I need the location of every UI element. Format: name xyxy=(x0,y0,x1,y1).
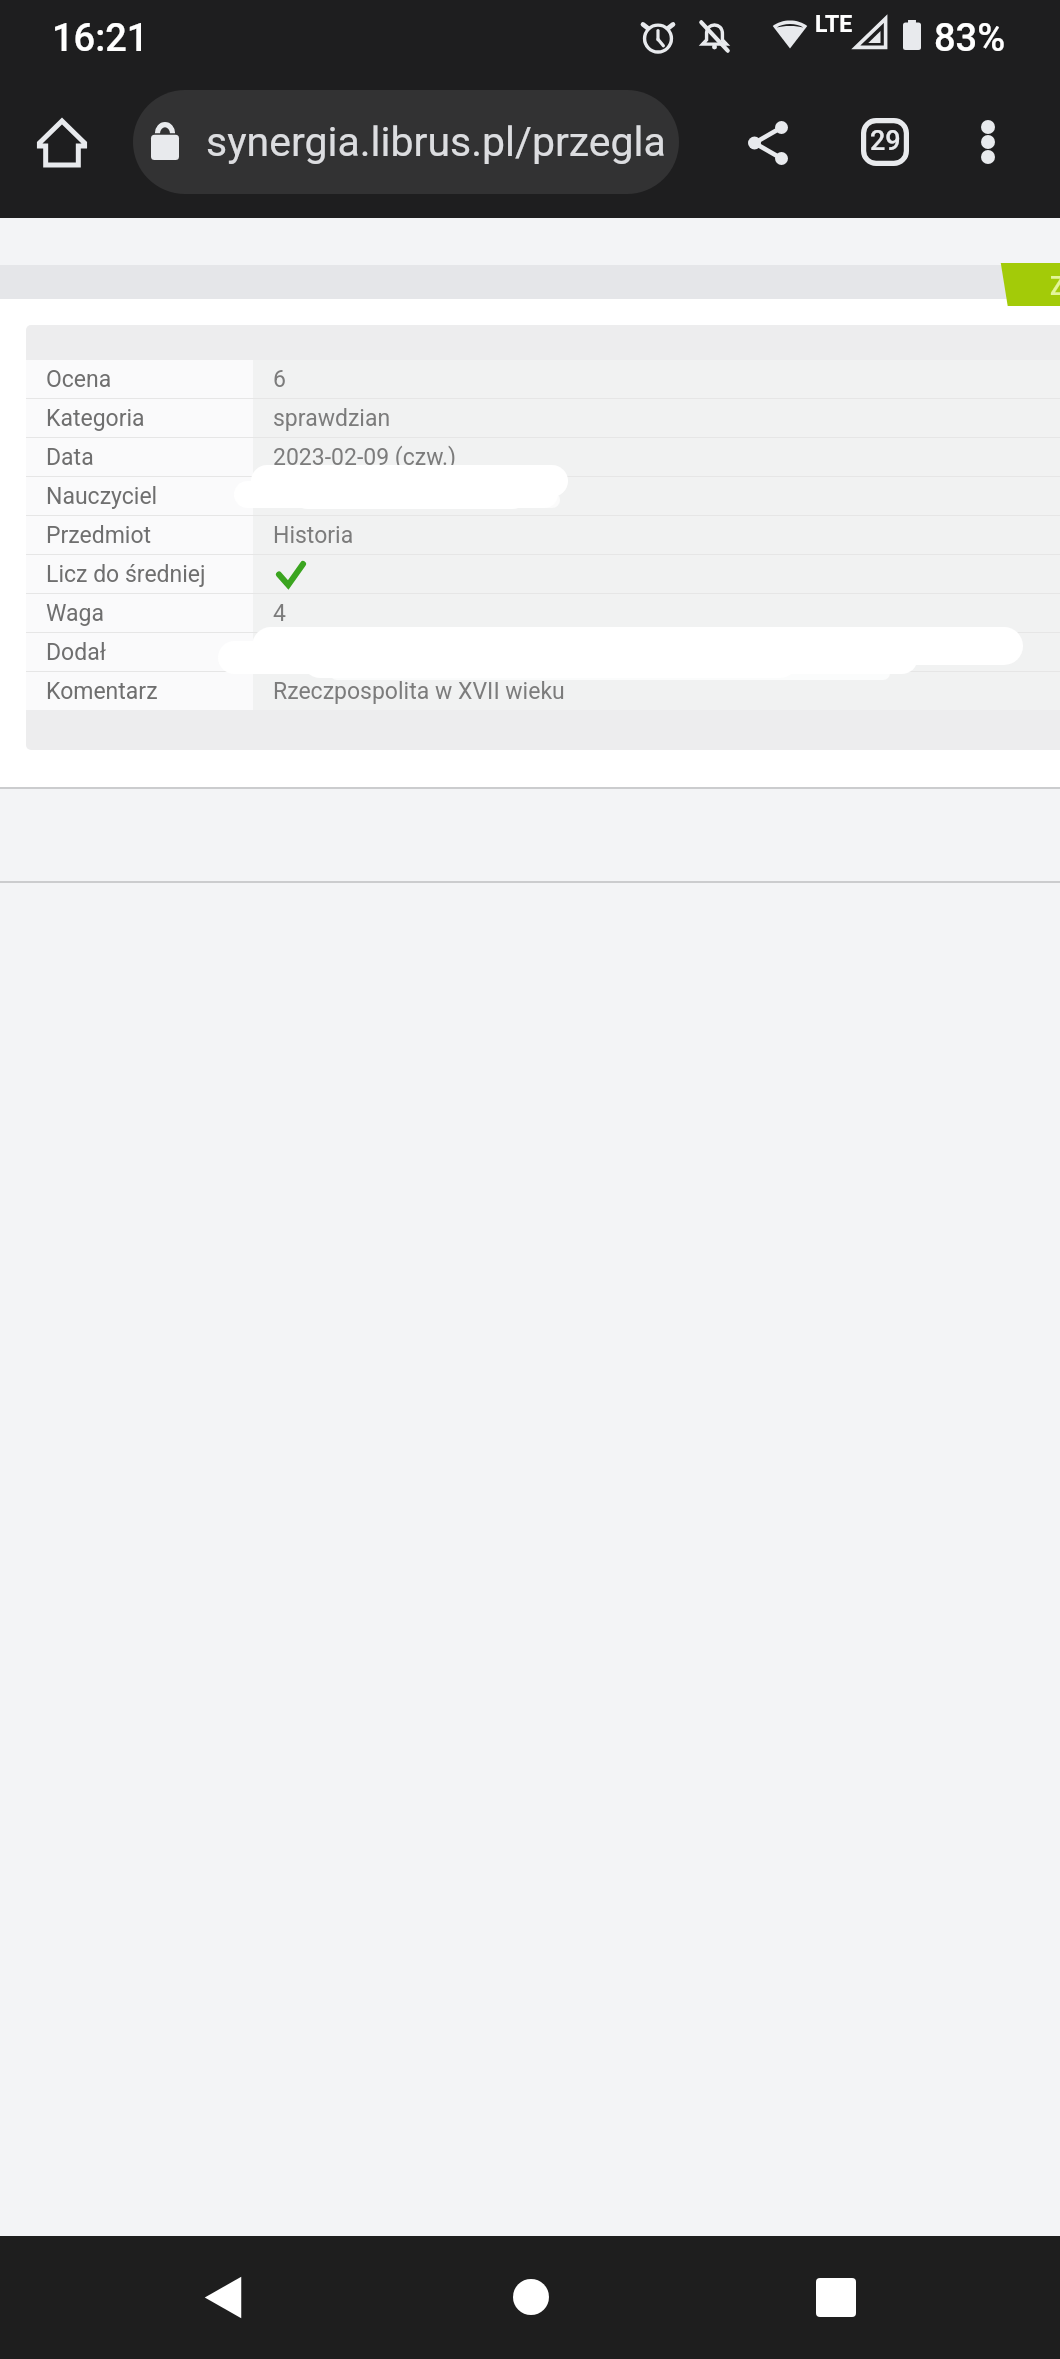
staticText: Dodał xyxy=(46,639,106,666)
button[interactable]: Share xyxy=(725,100,811,186)
staticText: Waga xyxy=(46,600,104,627)
staticText: Ocena xyxy=(46,366,112,393)
staticText: sprawdzian xyxy=(273,405,391,432)
button[interactable]: Back xyxy=(178,2252,268,2342)
staticText: 4 xyxy=(273,600,286,627)
button[interactable]: Home xyxy=(486,2252,576,2342)
staticText: Komentarz xyxy=(46,678,158,705)
staticText: 2023-02-09 (czw.) xyxy=(273,444,457,471)
staticText: Kategoria xyxy=(46,405,145,432)
button[interactable]: Tabs, 29 open xyxy=(842,99,928,185)
staticText: LTE xyxy=(815,11,853,38)
staticText: Data xyxy=(46,444,94,471)
button[interactable]: More options xyxy=(945,99,1031,185)
staticText: Nauczyciel xyxy=(46,483,158,510)
button[interactable]: Recent apps xyxy=(791,2252,881,2342)
staticText: Rzeczpospolita w XVII wieku xyxy=(273,678,565,705)
staticText: synergia.librus.pl/przegla xyxy=(206,118,666,166)
button[interactable]: Home xyxy=(22,103,102,183)
staticText: 6 xyxy=(273,366,286,393)
staticText: 83% xyxy=(934,16,1006,61)
staticText: Za xyxy=(1050,272,1060,301)
staticText: Historia xyxy=(273,522,354,549)
staticText: Przedmiot xyxy=(46,522,152,549)
staticText: Licz do średniej xyxy=(46,561,206,588)
button[interactable]: Zamknij xyxy=(997,263,1060,306)
staticText: 29 xyxy=(870,125,901,157)
button[interactable]: synergia.librus.pl/przegla xyxy=(133,90,679,194)
staticText: 16:21 xyxy=(52,16,149,61)
